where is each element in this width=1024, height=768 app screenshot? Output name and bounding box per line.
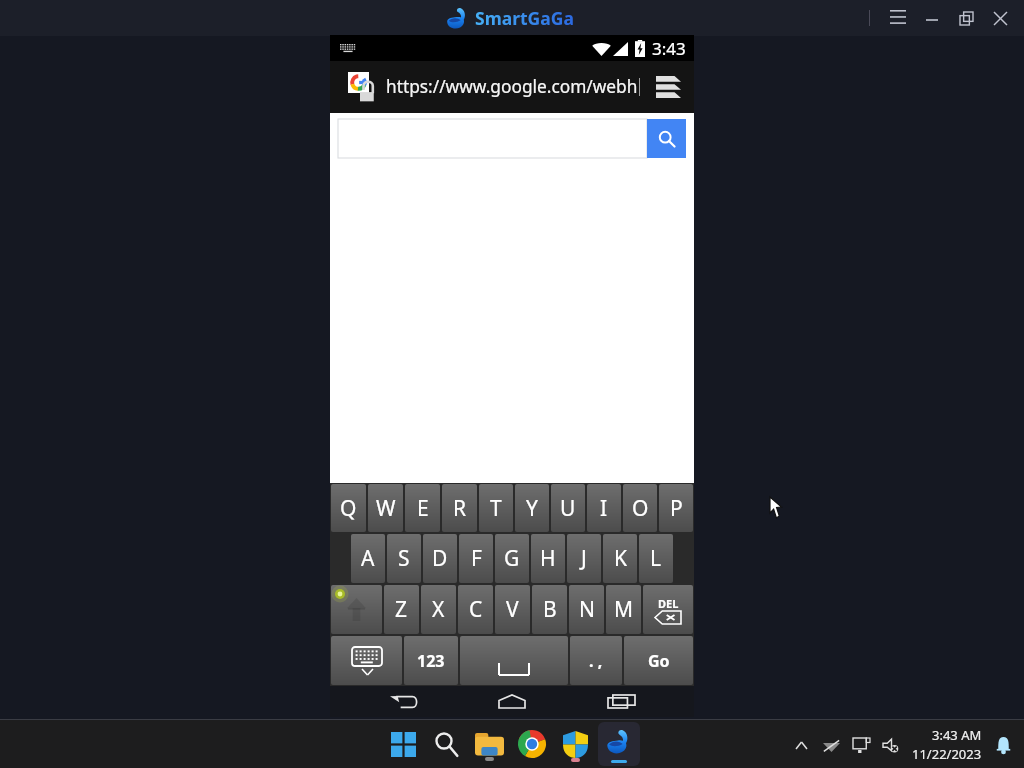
- button[interactable]: Show hidden icons: [786, 730, 816, 760]
- button[interactable]: Search: [647, 119, 686, 158]
- button[interactable]: I: [587, 484, 621, 532]
- button[interactable]: P: [659, 484, 693, 532]
- button[interactable]: O: [623, 484, 657, 532]
- button[interactable]: G: [495, 534, 529, 583]
- button[interactable]: K: [603, 534, 637, 583]
- button[interactable]: U: [551, 484, 585, 532]
- button[interactable]: Recents: [586, 686, 656, 717]
- staticText: SmartGaGa: [475, 6, 574, 30]
- button[interactable]: Menu: [884, 4, 912, 32]
- button[interactable]: Chrome: [512, 724, 552, 764]
- staticText: C: [469, 595, 483, 624]
- button[interactable]: E: [405, 484, 440, 532]
- button[interactable]: 3:43 AM: [912, 726, 982, 763]
- staticText: W: [376, 494, 396, 523]
- button[interactable]: Minimize: [918, 4, 946, 32]
- button[interactable]: R: [442, 484, 477, 532]
- button[interactable]: Q: [331, 484, 366, 532]
- button[interactable]: C: [458, 585, 493, 634]
- button[interactable]: Volume: [876, 730, 906, 760]
- button[interactable]: T: [479, 484, 513, 532]
- staticText: DEL: [658, 596, 679, 611]
- button[interactable]: 123: [404, 636, 458, 685]
- staticText: 11/22/2023: [912, 745, 982, 763]
- button[interactable]: Maximize: [952, 4, 980, 32]
- button[interactable]: Y: [515, 484, 549, 532]
- button[interactable]: key: [643, 585, 693, 634]
- staticText: G: [504, 544, 520, 573]
- staticText: B: [543, 595, 557, 624]
- button[interactable]: Back: [369, 686, 439, 717]
- button[interactable]: Tabs: [648, 67, 688, 107]
- button[interactable]: S: [387, 534, 421, 583]
- staticText: T: [490, 494, 502, 523]
- button[interactable]: N: [569, 585, 604, 634]
- button[interactable]: key: [570, 636, 622, 685]
- button[interactable]: A: [351, 534, 385, 583]
- button[interactable]: Security: [555, 724, 595, 764]
- button[interactable]: [338, 119, 647, 158]
- button[interactable]: V: [495, 585, 530, 634]
- staticText: 3:43 AM: [932, 726, 982, 744]
- staticText: R: [453, 494, 467, 523]
- button[interactable]: Z: [384, 585, 419, 634]
- button[interactable]: Notifications: [990, 732, 1016, 758]
- staticText: . ,: [589, 650, 603, 672]
- staticText: F: [471, 544, 482, 573]
- staticText: Z: [395, 595, 408, 624]
- button[interactable]: H: [531, 534, 565, 583]
- staticText: O: [632, 494, 649, 523]
- staticText: S: [398, 544, 410, 573]
- button[interactable]: SmartGaGa: [598, 722, 640, 766]
- button[interactable]: Close: [986, 4, 1014, 32]
- staticText: J: [581, 544, 587, 573]
- button[interactable]: W: [368, 484, 403, 532]
- button[interactable]: J: [567, 534, 601, 583]
- staticText: P: [670, 494, 683, 523]
- button[interactable]: D: [423, 534, 457, 583]
- staticText: L: [650, 544, 662, 573]
- button[interactable]: B: [532, 585, 567, 634]
- button[interactable]: key: [331, 585, 382, 634]
- staticText: H: [540, 544, 556, 573]
- button[interactable]: M: [606, 585, 641, 634]
- staticText: I: [600, 494, 608, 523]
- staticText: Y: [526, 494, 538, 523]
- button[interactable]: key: [460, 636, 568, 685]
- staticText: D: [432, 544, 448, 573]
- button[interactable]: Go: [624, 636, 693, 685]
- button[interactable]: Home: [477, 686, 547, 717]
- button[interactable]: Search: [426, 724, 466, 764]
- staticText: https://www.google.com/webh: [386, 75, 638, 99]
- staticText: A: [361, 544, 375, 573]
- staticText: U: [560, 494, 576, 523]
- staticText: Go: [648, 650, 670, 672]
- button[interactable]: key: [331, 636, 402, 685]
- staticText: 3:43: [652, 37, 686, 60]
- staticText: K: [614, 544, 627, 573]
- staticText: Q: [340, 494, 357, 523]
- staticText: M: [614, 595, 634, 624]
- staticText: 123: [417, 650, 445, 672]
- staticText: V: [506, 595, 519, 624]
- button[interactable]: X: [421, 585, 456, 634]
- staticText: X: [432, 595, 445, 624]
- staticText: N: [579, 595, 595, 624]
- button[interactable]: File Explorer: [469, 724, 509, 764]
- button[interactable]: Display: [846, 730, 876, 760]
- button[interactable]: Network: [816, 730, 846, 760]
- button[interactable]: L: [639, 534, 673, 583]
- button[interactable]: Start: [383, 724, 423, 764]
- button[interactable]: F: [459, 534, 493, 583]
- staticText: E: [417, 494, 429, 523]
